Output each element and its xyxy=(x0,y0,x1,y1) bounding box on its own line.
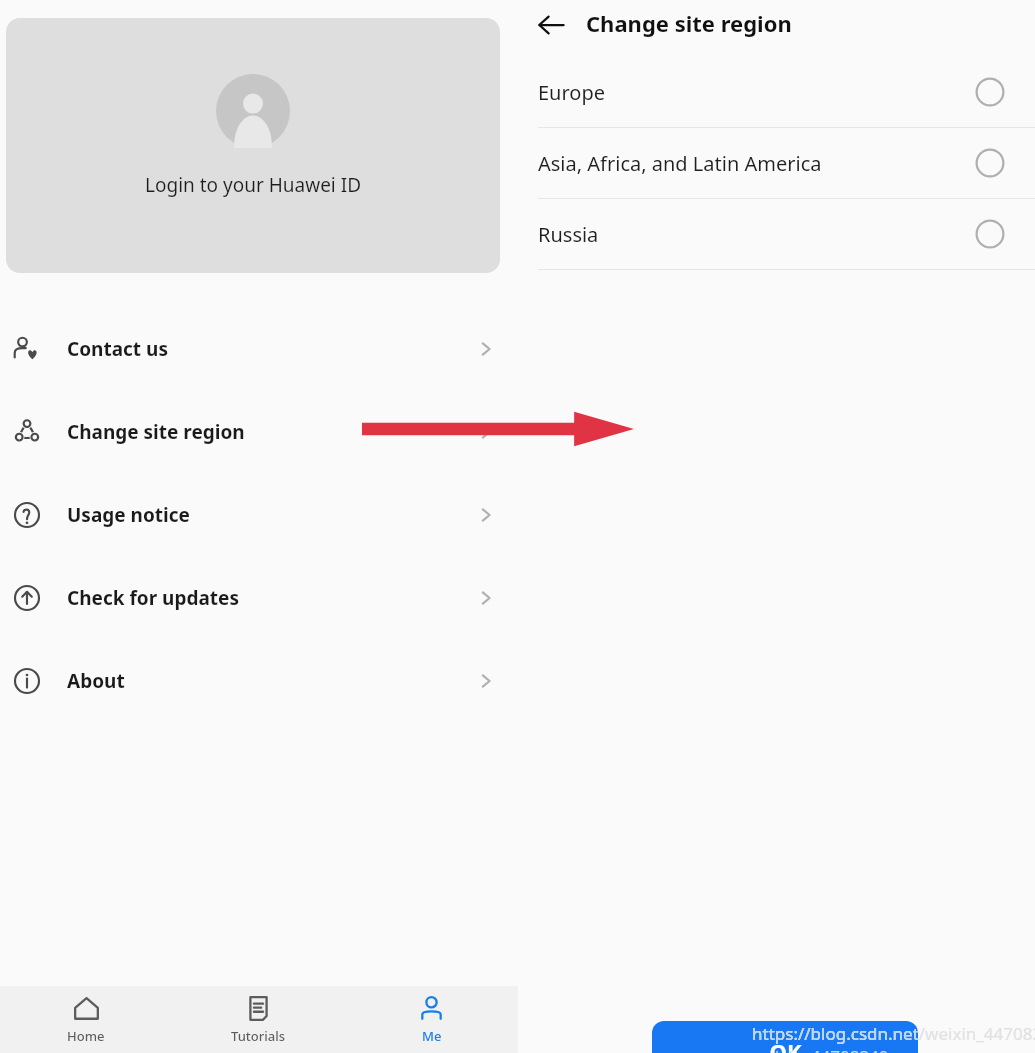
staticText: Russia xyxy=(538,221,599,248)
staticText: Login to your Huawei ID xyxy=(145,172,362,198)
button[interactable]: Back xyxy=(530,4,572,46)
staticText: Change site region xyxy=(586,8,792,38)
staticText: Europe xyxy=(538,79,606,106)
staticText: Contact us xyxy=(67,336,168,362)
staticText: Me xyxy=(422,1027,442,1045)
button[interactable]: Login to your Huawei ID xyxy=(6,18,500,273)
staticText: Asia, Africa, and Latin America xyxy=(538,150,822,177)
staticText: About xyxy=(67,668,125,694)
staticText: Check for updates xyxy=(67,585,239,611)
staticText: Change site region xyxy=(67,419,245,445)
button[interactable]: OK xyxy=(652,1021,918,1053)
button[interactable]: Me xyxy=(345,986,518,1053)
button[interactable]: Europe xyxy=(538,57,1035,128)
staticText: https://blog.csdn.net/weixin_44708240 xyxy=(752,1022,1035,1045)
button[interactable]: About xyxy=(0,648,518,714)
button[interactable]: Usage notice xyxy=(0,482,518,548)
button[interactable]: Asia, Africa, and Latin America xyxy=(538,128,1035,199)
staticText: Tutorials xyxy=(231,1027,286,1045)
staticText: Usage notice xyxy=(67,502,190,528)
button[interactable]: Check for updates xyxy=(0,565,518,631)
staticText: OK xyxy=(769,1036,802,1053)
button[interactable]: Russia xyxy=(538,199,1035,270)
staticText: https://blog.csdn.net/weixin_44708240 xyxy=(752,1022,918,1053)
staticText: Home xyxy=(67,1027,105,1045)
button[interactable]: Contact us xyxy=(0,316,518,382)
button[interactable]: Tutorials xyxy=(172,986,345,1053)
button[interactable]: Change site region xyxy=(0,399,518,465)
button[interactable]: Home xyxy=(0,986,172,1053)
